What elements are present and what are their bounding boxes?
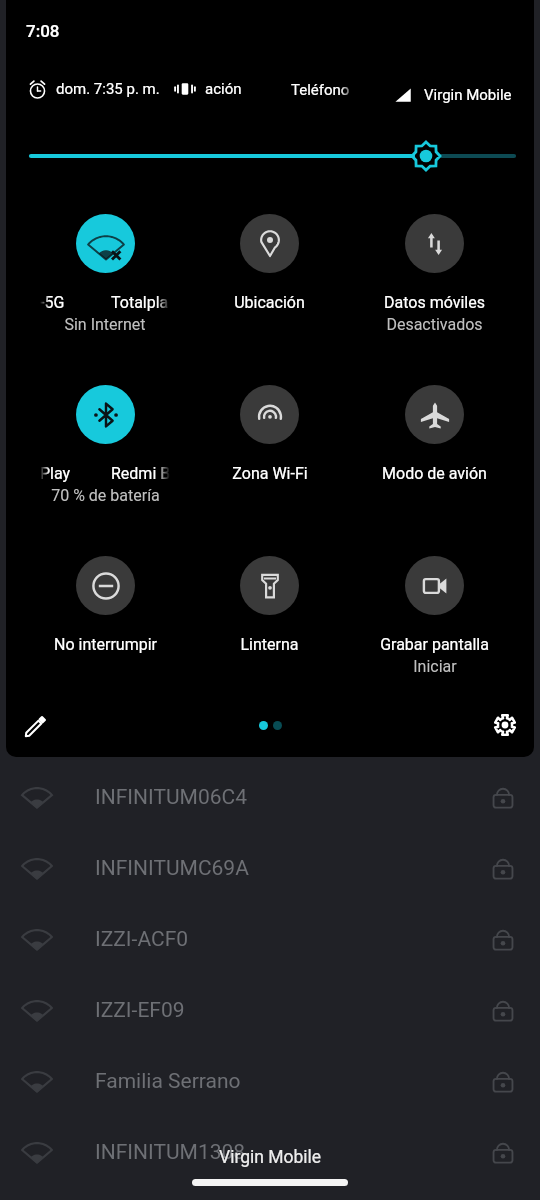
button[interactable]: Ubicación — [187, 214, 352, 312]
staticText: INFINITUM06C4 — [95, 785, 247, 810]
staticText: Grabar pantalla — [380, 635, 489, 654]
staticText: Datos móviles — [384, 293, 485, 312]
staticText: Virgin Mobile — [424, 86, 512, 104]
button[interactable]: IZZI-ACF0 — [0, 904, 540, 975]
staticText: Iniciar — [413, 657, 457, 676]
button[interactable]: Modo de avión — [352, 385, 517, 483]
button[interactable]: IZZI-EF09 — [0, 975, 540, 1046]
staticText: Play — [40, 464, 71, 483]
staticText: Sin Internet — [64, 315, 146, 334]
button[interactable]: INFINITUM06C4 — [0, 762, 540, 833]
button[interactable]: Edit tiles — [13, 704, 57, 748]
staticText: No interrumpir — [54, 635, 157, 654]
staticText: INFINITUM1308 — [95, 1140, 246, 1165]
staticText: Ubicación — [234, 293, 305, 312]
staticText: Redmi B — [111, 464, 170, 483]
staticText: IZZI-ACF0 — [95, 927, 189, 952]
button[interactable]: Familia Serrano — [0, 1046, 540, 1117]
staticText: ación — [205, 80, 242, 98]
staticText: -5G — [40, 293, 65, 312]
staticText: IZZI-EF09 — [95, 998, 185, 1023]
button[interactable]: Grabar pantalla — [352, 556, 517, 676]
button[interactable]: No interrumpir — [23, 556, 187, 654]
button[interactable]: Settings — [483, 703, 527, 747]
button[interactable]: Zona Wi-Fi — [187, 385, 352, 483]
button[interactable]: Datos móviles — [352, 214, 517, 334]
staticText: Familia Serrano — [95, 1069, 241, 1094]
staticText: Linterna — [240, 635, 299, 654]
button[interactable]: -5G — [23, 214, 187, 334]
staticText: 70 % de batería — [51, 486, 160, 505]
staticText: dom. 7:35 p. m. — [56, 80, 160, 98]
staticText: INFINITUMC69A — [95, 856, 249, 881]
staticText: Desactivados — [386, 315, 483, 334]
button[interactable]: Brightness — [6, 136, 534, 176]
button[interactable]: Linterna — [187, 556, 352, 654]
staticText: Virgin Mobile — [219, 1147, 322, 1168]
button[interactable]: INFINITUM1308 — [0, 1117, 540, 1188]
staticText: Modo de avión — [382, 464, 487, 483]
staticText: 7:08 — [26, 21, 60, 41]
staticText: Zona Wi-Fi — [232, 464, 308, 483]
button[interactable]: Play — [23, 385, 187, 505]
staticText: Teléfono — [291, 81, 350, 99]
button[interactable]: INFINITUMC69A — [0, 833, 540, 904]
staticText: Totalpla — [111, 293, 169, 312]
